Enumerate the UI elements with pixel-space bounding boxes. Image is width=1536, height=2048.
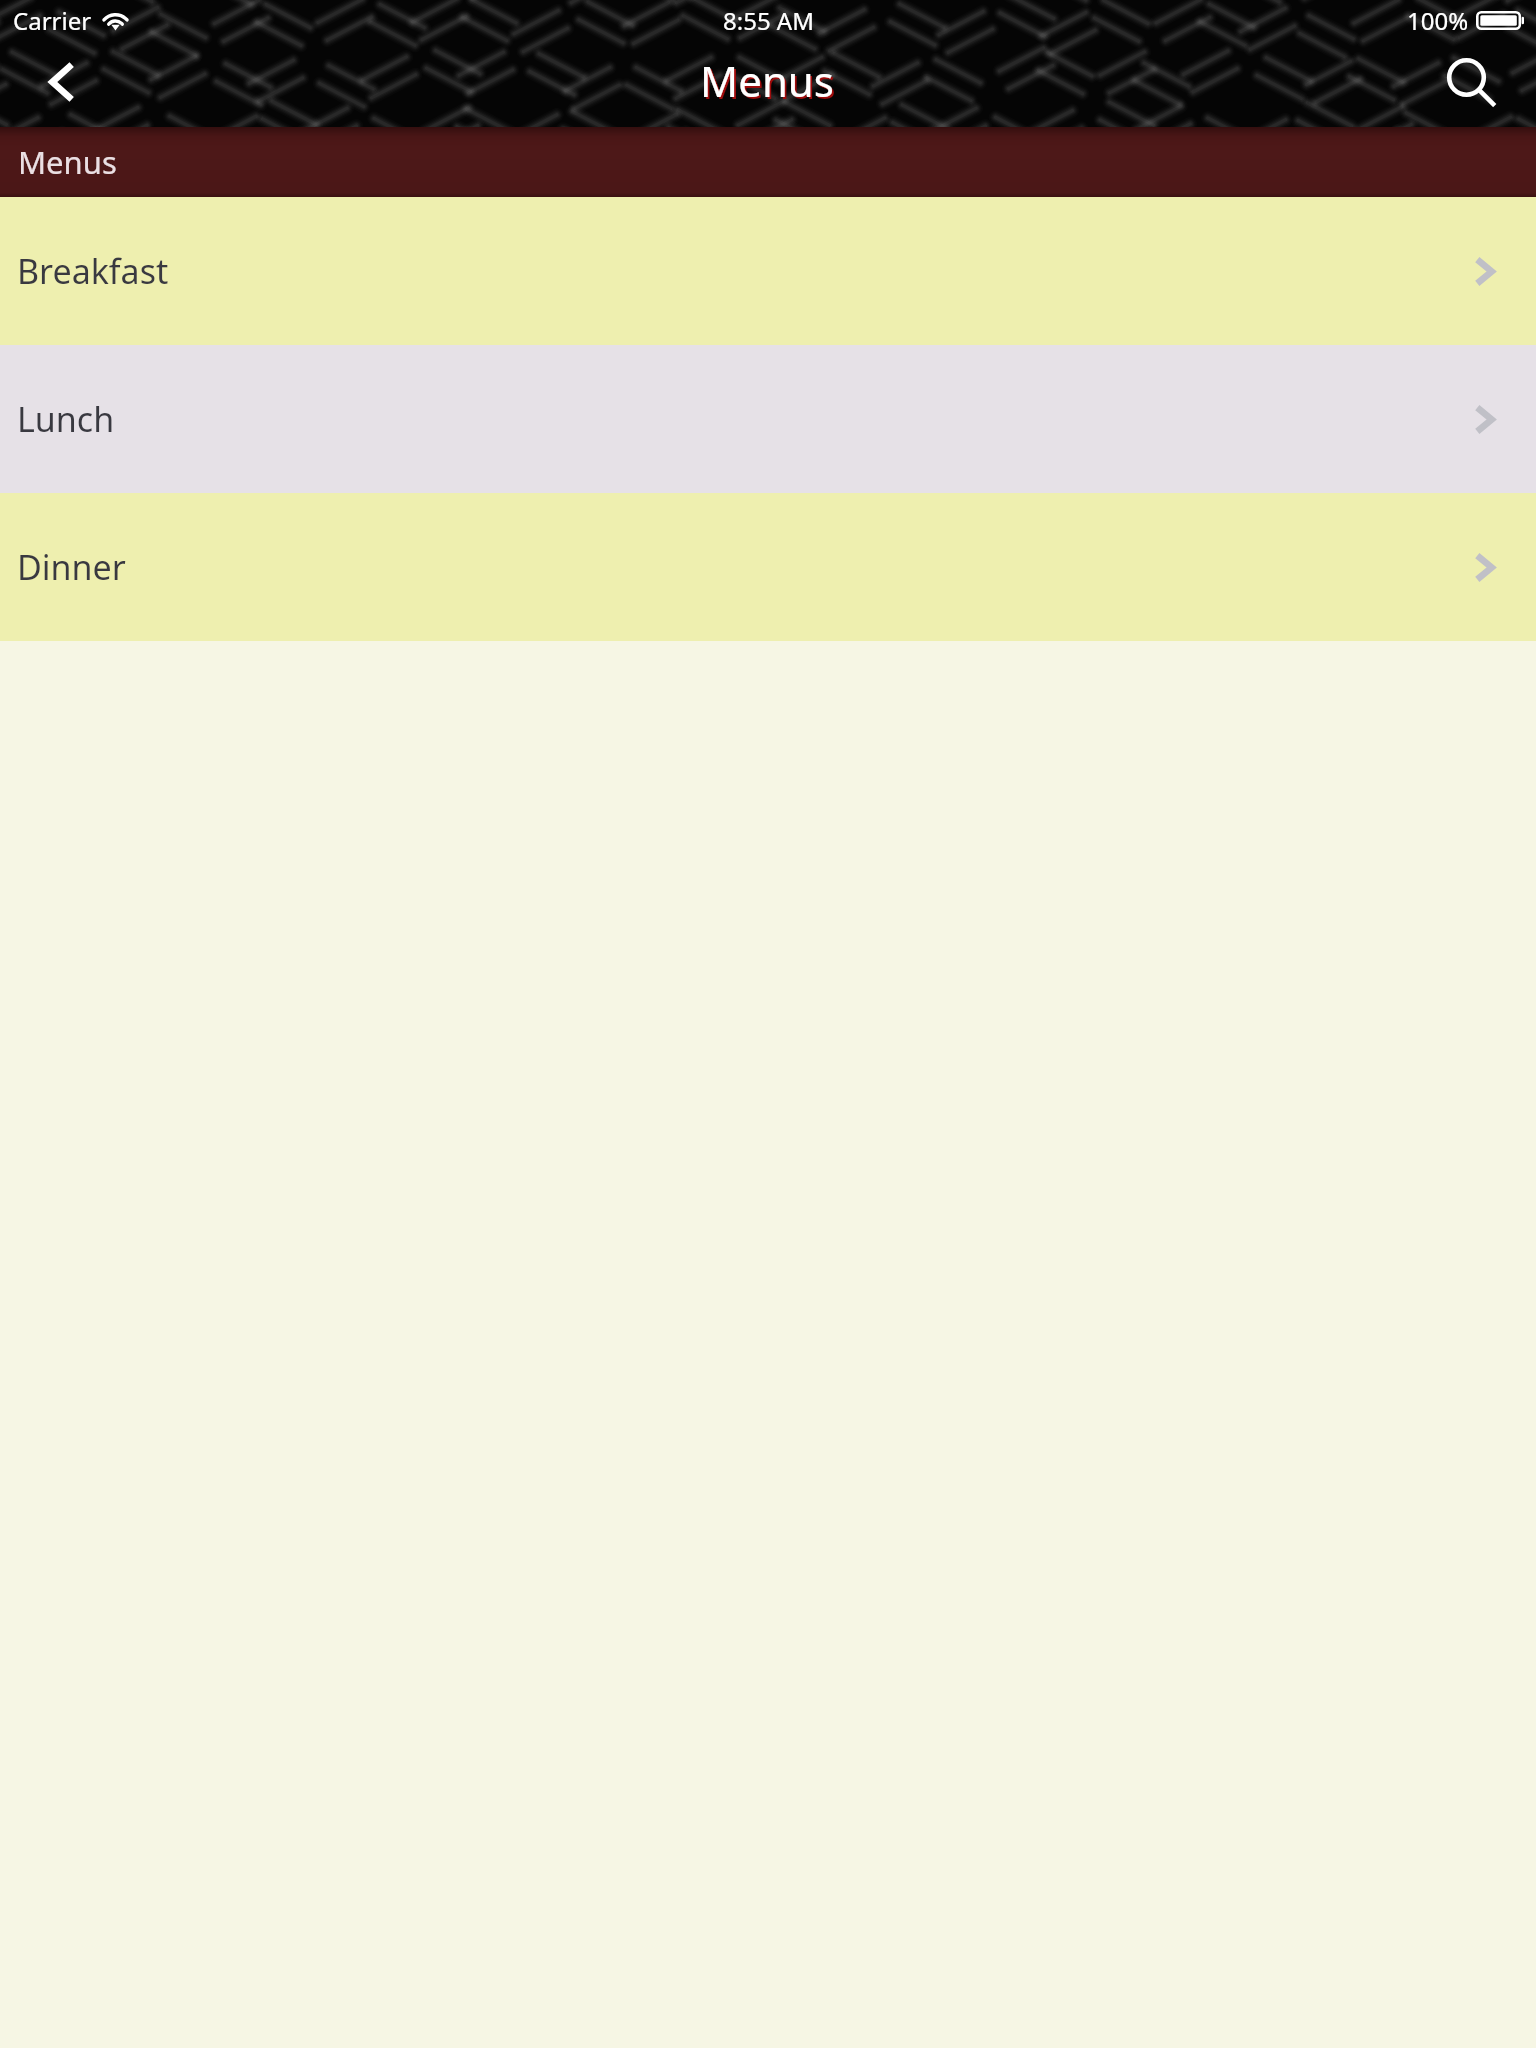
button[interactable]: Dinner xyxy=(0,493,1536,641)
staticText: Menus xyxy=(700,52,834,109)
staticText: Breakfast xyxy=(17,248,169,294)
button[interactable]: Back xyxy=(26,46,98,118)
staticText: 8:55 AM xyxy=(723,4,814,37)
staticText: Menus xyxy=(18,141,117,183)
staticText: Carrier xyxy=(13,4,92,37)
staticText: 100% xyxy=(1407,4,1469,37)
button[interactable]: Search xyxy=(1434,46,1506,118)
button[interactable]: Breakfast xyxy=(0,197,1536,345)
button[interactable]: Lunch xyxy=(0,345,1536,493)
staticText: Menus xyxy=(702,54,836,111)
staticText: Dinner xyxy=(17,544,126,590)
staticText: Lunch xyxy=(17,396,115,442)
